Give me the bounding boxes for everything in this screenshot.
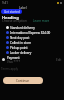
staticText: Locker delivery xyxy=(10,51,32,55)
staticText: Edit xyxy=(56,58,62,62)
button[interactable]: Next day post xyxy=(6,35,62,40)
button[interactable]: Locker delivery xyxy=(6,50,62,55)
staticText: Terms apply xyxy=(1,67,19,71)
staticText: International Express $24.00 xyxy=(10,31,51,35)
button[interactable]: Pickup point xyxy=(6,45,62,50)
button[interactable]: Standard delivery xyxy=(6,25,62,30)
staticText: Next day post xyxy=(10,36,30,40)
button[interactable]: Get started xyxy=(1,9,22,14)
staticText: Payment xyxy=(7,56,20,60)
staticText: Continue xyxy=(16,79,30,83)
button[interactable]: Payment xyxy=(2,56,62,63)
button[interactable]: Learn more xyxy=(33,19,50,23)
button[interactable]: Collect in store xyxy=(6,40,62,45)
staticText: Heading xyxy=(2,15,19,20)
staticText: 9:41 xyxy=(2,1,8,5)
button[interactable]: International Express $24.00 xyxy=(6,30,62,35)
staticText: Standard delivery xyxy=(10,26,35,30)
staticText: Label xyxy=(19,6,27,10)
staticText: Choose an option xyxy=(2,19,27,23)
staticText: Get started xyxy=(4,10,20,14)
staticText: Visa **** xyxy=(7,60,21,63)
button[interactable]: Continue xyxy=(3,77,43,84)
staticText: Collect in store xyxy=(10,41,31,45)
staticText: Learn more xyxy=(33,19,50,23)
staticText: Pickup point xyxy=(10,46,28,50)
